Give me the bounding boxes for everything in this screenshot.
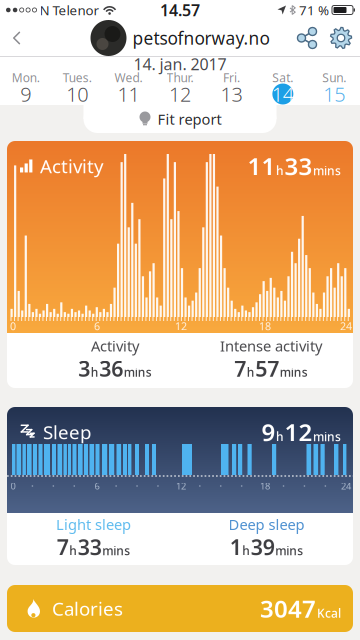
staticText: 18 [259,319,271,333]
staticText: 12 [284,416,312,448]
staticText: Fri. [223,69,240,85]
staticText: petsofnorway.no [132,26,269,49]
staticText: h [247,364,255,380]
staticText: 11 [247,150,275,182]
staticText: h [91,364,99,380]
staticText: 0 [10,480,15,492]
staticText: 36 [99,354,123,383]
staticText: mins [275,543,303,559]
staticText: 71 % [299,1,329,19]
staticText: 15 [323,81,345,107]
staticText: Kcal [317,605,341,621]
staticText: Light sleep [56,515,131,534]
staticText: mins [313,163,341,178]
staticText: 7 [234,354,246,383]
button[interactable]: Wed. [103,72,154,105]
staticText: 11 [118,81,140,107]
staticText: mins [280,364,308,380]
button[interactable]: Share [292,20,322,56]
staticText: 14.57 [160,0,200,21]
staticText: 0 [10,319,16,333]
staticText: h [69,543,77,559]
staticText: 57 [255,354,279,383]
staticText: 14. jan. 2017 [133,53,226,75]
button[interactable]: Mon. [0,72,51,105]
staticText: 1 [230,533,242,561]
staticText: Activity [40,153,104,178]
button[interactable]: Fri. [206,72,257,105]
staticText: Intense activity [220,336,322,356]
staticText: 12 [175,319,187,333]
staticText: 9 [20,81,31,107]
staticText: 39 [251,533,275,561]
staticText: Sun. [322,69,346,85]
staticText: N Telenor [40,1,100,19]
button[interactable]: Calories [7,585,353,632]
staticText: 12 [169,81,191,107]
staticText: 24 [341,480,351,492]
staticText: 14 [272,81,294,107]
staticText: h [276,429,284,444]
staticText: 33 [284,150,312,182]
staticText: mins [102,543,130,559]
staticText: mins [124,364,152,380]
staticText: 6 [94,480,99,492]
staticText: Activity [91,336,139,356]
staticText: Deep sleep [228,515,304,534]
staticText: 7 [57,533,69,561]
staticText: 6 [94,319,100,333]
staticText: 13 [220,81,242,107]
staticText: 10 [66,81,88,107]
staticText: Mon. [12,69,40,85]
staticText: 24 [340,319,352,333]
staticText: Calories [52,596,123,621]
button[interactable]: Back [0,20,34,56]
staticText: h [242,543,250,559]
staticText: 9 [261,416,275,448]
staticText: 33 [78,533,102,561]
button[interactable]: Fit report [83,105,276,133]
staticText: 3047 [260,593,316,624]
staticText: Fit report [157,109,221,129]
staticText: 12 [176,480,186,492]
button[interactable]: Tues. [51,72,103,105]
button[interactable]: Sun. [309,72,360,105]
staticText: Thur. [166,69,193,85]
staticText: Sleep [43,419,91,444]
staticText: Sat. [272,69,293,85]
staticText: 18 [260,480,270,492]
staticText: h [276,163,284,178]
staticText: mins [313,429,341,444]
staticText: Wed. [115,69,143,85]
button[interactable]: Settings [322,20,360,56]
staticText: Tues. [63,69,92,85]
button[interactable]: Sat. [257,72,308,105]
staticText: 3 [78,354,90,383]
button[interactable]: Thur. [154,72,206,105]
